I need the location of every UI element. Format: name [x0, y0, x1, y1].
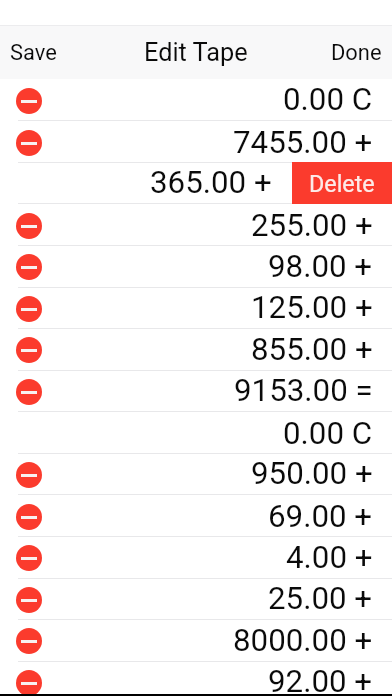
- button[interactable]: Remove entry: [16, 587, 42, 613]
- staticText: Delete: [309, 170, 375, 197]
- button[interactable]: 0.00 C: [0, 411, 392, 453]
- staticText: 69.00 +: [268, 498, 373, 535]
- button[interactable]: Remove entry: [0, 287, 392, 328]
- staticText: 0.00 C: [283, 415, 373, 452]
- button[interactable]: Remove entry: [16, 504, 42, 530]
- button[interactable]: Remove entry: [16, 254, 42, 280]
- button[interactable]: Remove entry: [0, 494, 392, 536]
- staticText: Save: [10, 40, 57, 66]
- button[interactable]: Remove entry: [0, 328, 392, 370]
- staticText: Done: [331, 40, 382, 66]
- button[interactable]: Remove entry: [16, 296, 42, 322]
- button[interactable]: Remove entry: [0, 120, 392, 162]
- button[interactable]: Remove entry: [0, 245, 392, 287]
- button[interactable]: Remove entry: [16, 670, 42, 696]
- button[interactable]: Remove entry: [0, 79, 392, 120]
- button[interactable]: Remove entry: [0, 578, 392, 619]
- button[interactable]: Remove entry: [0, 619, 392, 661]
- button[interactable]: Remove entry: [16, 379, 42, 405]
- staticText: 855.00 +: [251, 331, 373, 368]
- button[interactable]: Remove entry: [16, 213, 42, 239]
- staticText: 950.00 +: [251, 455, 373, 492]
- staticText: 255.00 +: [251, 207, 373, 244]
- button[interactable]: Remove entry: [0, 453, 392, 494]
- staticText: 125.00 +: [251, 289, 373, 326]
- staticText: 98.00 +: [268, 248, 373, 285]
- button[interactable]: Remove entry: [16, 337, 42, 363]
- staticText: 8000.00 +: [233, 622, 373, 659]
- button[interactable]: Remove entry: [16, 462, 42, 488]
- button[interactable]: Remove entry: [16, 130, 42, 156]
- staticText: 0.00 C: [283, 81, 373, 118]
- staticText: 7455.00 +: [233, 124, 373, 161]
- button[interactable]: 365.00 +: [0, 162, 392, 203]
- button[interactable]: Done: [319, 31, 392, 75]
- button[interactable]: Delete: [292, 162, 392, 204]
- staticText: 25.00 +: [268, 580, 373, 617]
- button[interactable]: Remove entry: [0, 536, 392, 578]
- button[interactable]: Remove entry: [16, 545, 42, 571]
- button[interactable]: Remove entry: [0, 203, 392, 245]
- staticText: 365.00 +: [150, 164, 272, 201]
- button[interactable]: Remove entry: [0, 661, 392, 696]
- staticText: Edit Tape: [144, 38, 248, 68]
- button[interactable]: Save: [0, 31, 69, 75]
- button[interactable]: Remove entry: [16, 88, 42, 114]
- button[interactable]: Remove entry: [0, 370, 392, 411]
- button[interactable]: Remove entry: [16, 628, 42, 654]
- staticText: 4.00 +: [286, 539, 373, 576]
- staticText: 92.00 +: [268, 663, 373, 696]
- staticText: 9153.00 =: [234, 372, 373, 409]
